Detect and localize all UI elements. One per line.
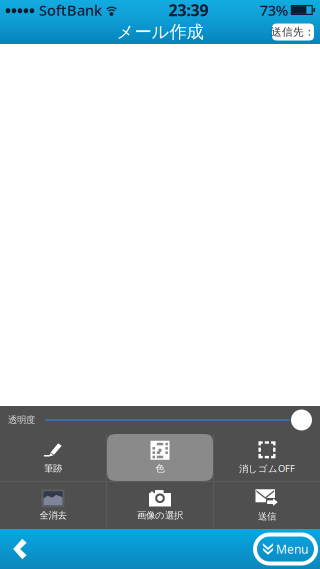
staticText: 画像の選択 [137, 510, 183, 521]
staticText: 送信先： [271, 25, 315, 38]
staticText: 23:39 [168, 0, 208, 21]
staticText: 消しゴムOFF [239, 462, 295, 475]
button[interactable]: 画像の選択 [107, 482, 213, 529]
button[interactable]: 送信先： [272, 23, 314, 40]
staticText: ••••• [5, 0, 35, 21]
staticText: 筆跡 [44, 463, 62, 474]
button[interactable]: 筆跡 [0, 434, 106, 481]
button[interactable]: 送信 [214, 482, 320, 529]
button[interactable]: Back [0, 529, 40, 569]
button[interactable]: Menu [255, 534, 316, 563]
staticText: メール作成 [116, 21, 203, 43]
staticText: 全消去 [39, 510, 66, 521]
staticText: Menu [276, 541, 308, 557]
staticText: 透明度 [8, 414, 35, 426]
button[interactable]: 色 [107, 434, 213, 481]
button[interactable]: 全消去 [0, 482, 106, 529]
staticText: 色 [155, 463, 164, 474]
staticText: SoftBank [35, 0, 106, 20]
button[interactable]: 消しゴムOFF [214, 434, 320, 481]
staticText: 送信 [258, 511, 276, 522]
staticText: 73% [260, 0, 288, 20]
